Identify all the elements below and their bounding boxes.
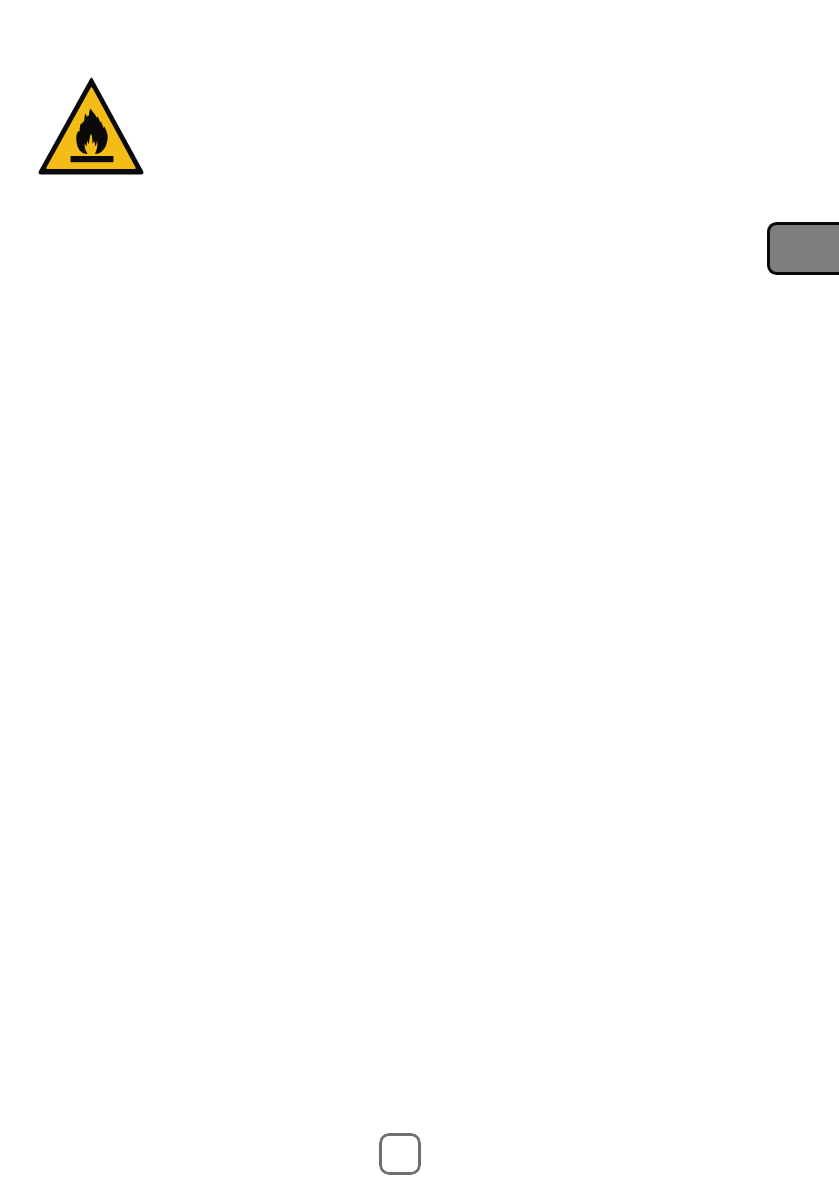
button[interactable]: Button xyxy=(767,222,839,275)
button[interactable]: Flammable material warning xyxy=(35,75,147,177)
button[interactable]: Checkbox xyxy=(379,1133,421,1175)
